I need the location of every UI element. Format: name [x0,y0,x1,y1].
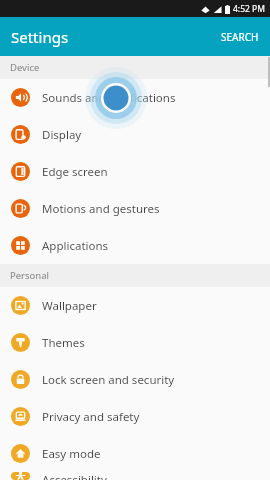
staticText: Privacy and safety [42,409,140,425]
button[interactable]: Display [0,116,270,153]
button[interactable]: Edge screen [0,153,270,190]
staticText: Device [10,61,40,74]
button[interactable]: Privacy and safety [0,398,270,435]
button[interactable]: SEARCH [210,22,270,52]
button[interactable]: Accessibility [0,472,270,480]
staticText: Wallpaper [42,298,97,314]
staticText: SEARCH [221,30,259,44]
staticText: Sounds and notifications [42,90,176,106]
staticText: Settings [11,27,69,47]
button[interactable]: Lock screen and security [0,361,270,398]
button[interactable]: Sounds and notifications [0,79,270,116]
staticText: Easy mode [42,446,101,462]
button[interactable]: Wallpaper [0,287,270,324]
button[interactable]: Easy mode [0,435,270,472]
staticText: Motions and gestures [42,201,160,217]
staticText: Display [42,127,82,143]
staticText: Themes [42,335,85,351]
button[interactable]: Motions and gestures [0,190,270,227]
staticText: Personal [10,269,49,282]
staticText: Applications [42,238,109,254]
staticText: Accessibility [42,472,107,480]
staticText: Edge screen [42,164,108,180]
button[interactable]: Themes [0,324,270,361]
button[interactable]: Applications [0,227,270,264]
staticText: Lock screen and security [42,372,175,388]
staticText: 4:52 PM [233,3,265,15]
